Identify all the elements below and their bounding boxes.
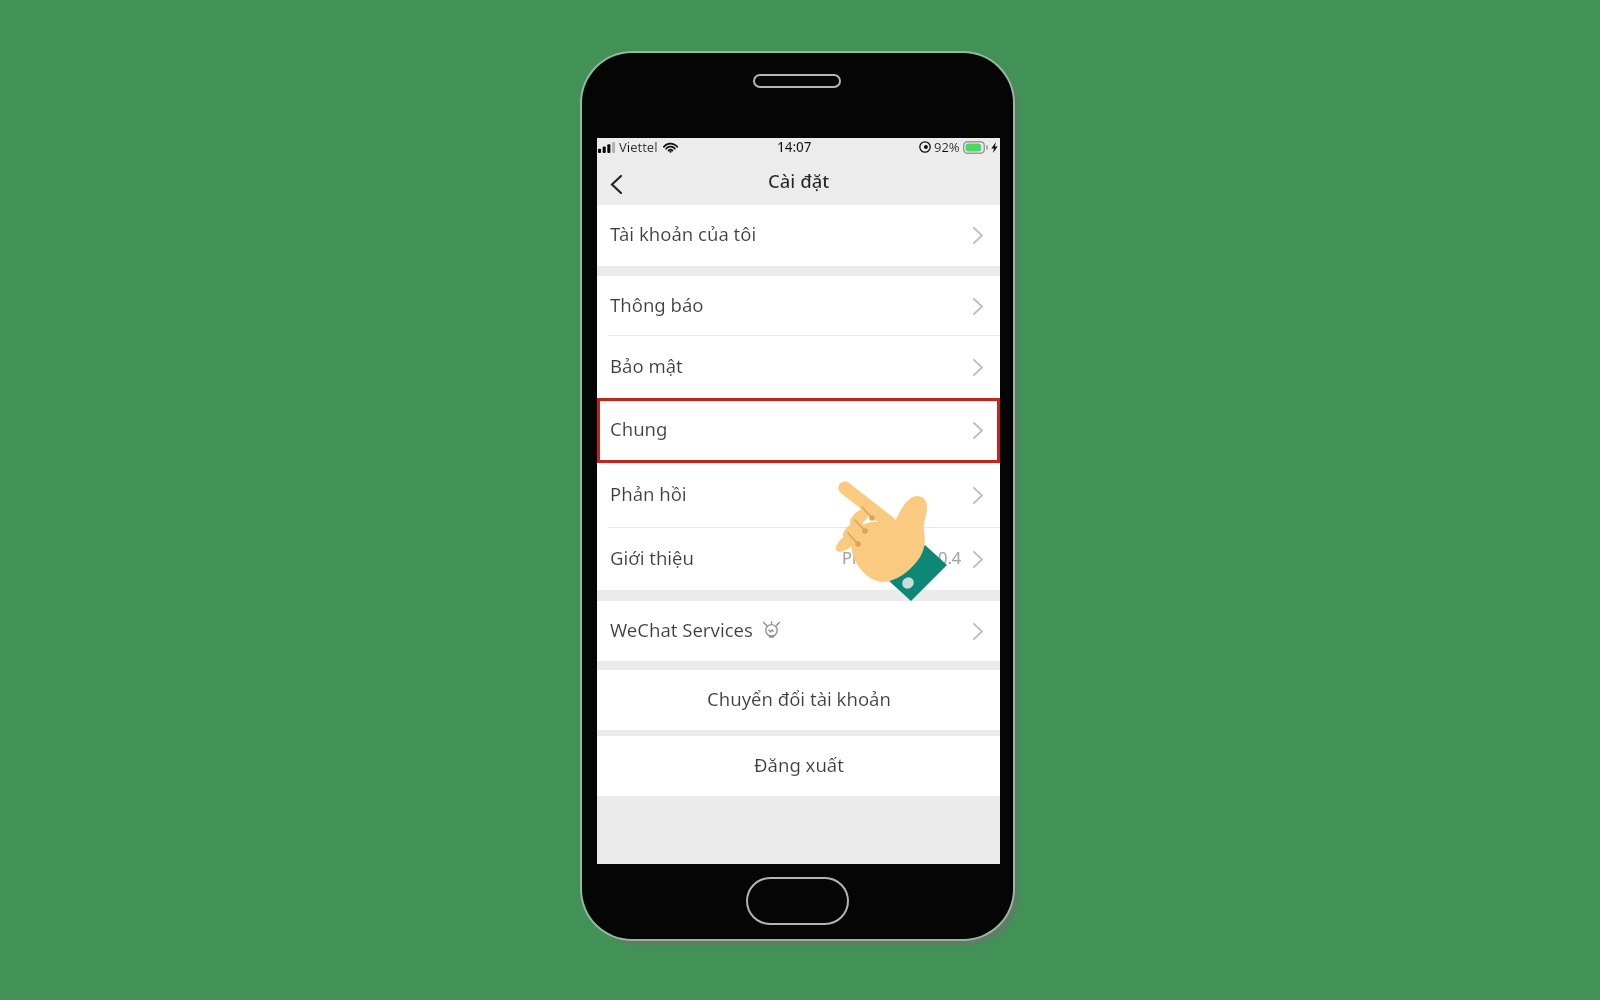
- button[interactable]: Giới thiệu: [597, 528, 1000, 590]
- staticText: Thông báo: [610, 292, 704, 317]
- staticText: Phản hồi: [610, 481, 687, 506]
- staticText: Tài khoản của tôi: [610, 221, 757, 246]
- button[interactable]: Bảo mật: [597, 336, 1000, 398]
- staticText: Giới thiệu: [610, 545, 694, 570]
- staticText: 92%: [934, 138, 960, 156]
- button[interactable]: Chung: [597, 398, 1000, 463]
- staticText: Cài đặt: [768, 168, 830, 193]
- button[interactable]: Chuyển đổi tài khoản: [597, 670, 1000, 730]
- staticText: Viettel: [619, 138, 658, 156]
- button[interactable]: WeChat Services: [597, 601, 1000, 661]
- button[interactable]: Thông báo: [597, 276, 1000, 336]
- staticText: Phiên bản 8.0.4: [842, 546, 962, 568]
- button[interactable]: Back: [597, 164, 637, 204]
- staticText: Chung: [610, 416, 668, 441]
- button[interactable]: Đăng xuất: [597, 736, 1000, 796]
- staticText: WeChat Services: [610, 617, 753, 642]
- button[interactable]: Tài khoản của tôi: [597, 205, 1000, 266]
- staticText: Chuyển đổi tài khoản: [707, 686, 891, 711]
- staticText: Đăng xuất: [754, 752, 844, 777]
- button[interactable]: Phản hồi: [597, 463, 1000, 528]
- staticText: Bảo mật: [610, 353, 683, 378]
- staticText: 14:07: [777, 138, 812, 156]
